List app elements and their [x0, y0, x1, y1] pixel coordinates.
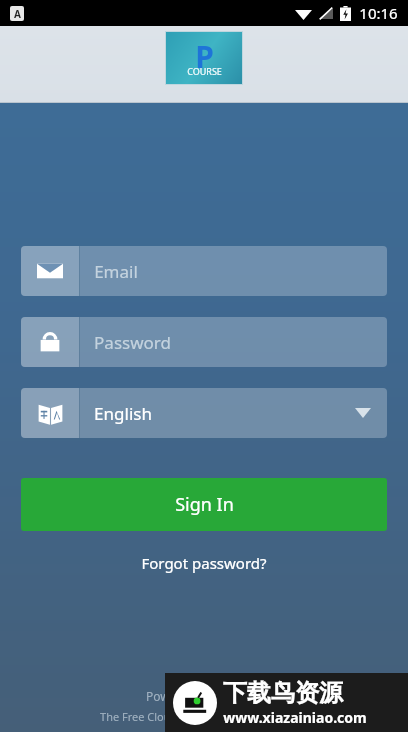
button[interactable]: Password [21, 317, 387, 367]
staticText: A [14, 7, 21, 21]
staticText: COURSE [187, 65, 222, 77]
staticText: English [94, 402, 152, 425]
staticText: Sign In [175, 492, 234, 517]
staticText: 10:16 [359, 3, 398, 23]
button[interactable]: Forgot password? [0, 553, 408, 573]
staticText: www.xiazainiao.com [223, 708, 367, 727]
staticText: Forgot password? [141, 553, 267, 573]
staticText: Email [94, 260, 138, 283]
button[interactable]: Sign In [21, 478, 387, 531]
staticText: Password [94, 331, 171, 354]
staticText: P [195, 36, 214, 77]
staticText: 下载鸟资源 [223, 678, 343, 708]
button[interactable]: Select language, English [21, 388, 387, 438]
staticText: Powered by PCourse [146, 688, 262, 704]
button[interactable]: Email [21, 246, 387, 296]
staticText: The Free Cloud-Based Learning Platform [100, 709, 309, 724]
